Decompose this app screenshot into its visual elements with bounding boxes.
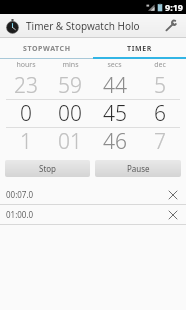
- staticText: 59: [58, 71, 82, 99]
- staticText: 23: [14, 71, 38, 99]
- button[interactable]: 01: [48, 127, 92, 155]
- button[interactable]: 44: [92, 71, 137, 99]
- staticText: Timer & Stopwatch Holo: [26, 19, 140, 33]
- staticText: 45: [103, 99, 127, 127]
- button[interactable]: 59: [48, 71, 92, 99]
- button[interactable]: 00: [48, 99, 92, 127]
- button[interactable]: 01:00.0: [0, 205, 186, 224]
- staticText: secs: [107, 60, 122, 70]
- staticText: 1: [20, 127, 32, 155]
- button[interactable]: TIMER: [93, 38, 186, 59]
- staticText: 7: [154, 127, 166, 155]
- staticText: mins: [62, 60, 79, 70]
- button[interactable]: 7: [137, 127, 182, 155]
- staticText: TIMER: [127, 44, 152, 54]
- button[interactable]: Stop: [5, 160, 90, 177]
- staticText: 46: [103, 127, 127, 155]
- staticText: Stop: [39, 163, 57, 174]
- staticText: Pause: [127, 163, 150, 174]
- staticText: 01:00.0: [6, 209, 34, 220]
- staticText: 5: [154, 71, 166, 99]
- staticText: 44: [103, 71, 127, 99]
- button[interactable]: 00:07.0: [0, 185, 186, 204]
- staticText: hours: [16, 60, 36, 70]
- button[interactable]: 5: [137, 71, 182, 99]
- staticText: STOPWATCH: [23, 44, 71, 54]
- button[interactable]: 45: [92, 99, 137, 127]
- button[interactable]: 0: [4, 99, 48, 127]
- button[interactable]: 23: [4, 71, 48, 99]
- button[interactable]: Pause: [95, 160, 181, 177]
- button[interactable]: 1: [4, 127, 48, 155]
- staticText: dec: [154, 60, 166, 70]
- staticText: 9:19: [165, 1, 183, 13]
- staticText: 0: [20, 99, 32, 127]
- button[interactable]: Settings: [161, 16, 181, 36]
- button[interactable]: Delete: [166, 208, 180, 222]
- staticText: 00:07.0: [6, 189, 34, 200]
- button[interactable]: 46: [92, 127, 137, 155]
- staticText: 01: [58, 127, 82, 155]
- button[interactable]: STOPWATCH: [0, 38, 93, 59]
- staticText: 00: [58, 99, 82, 127]
- button[interactable]: Delete: [166, 188, 180, 202]
- button[interactable]: 6: [137, 99, 182, 127]
- staticText: 6: [154, 99, 166, 127]
